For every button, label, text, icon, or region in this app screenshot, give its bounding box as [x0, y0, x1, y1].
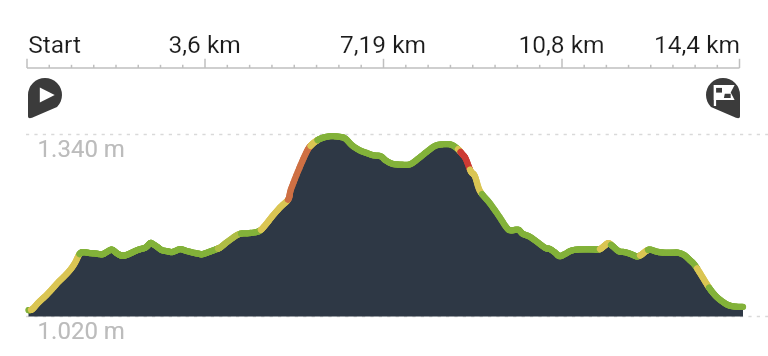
button[interactable]: Finish point [706, 78, 740, 119]
button[interactable]: Start point [28, 78, 62, 119]
